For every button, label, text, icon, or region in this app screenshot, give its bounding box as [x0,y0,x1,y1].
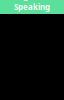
staticText: English Speaking Course [14,0,50,23]
